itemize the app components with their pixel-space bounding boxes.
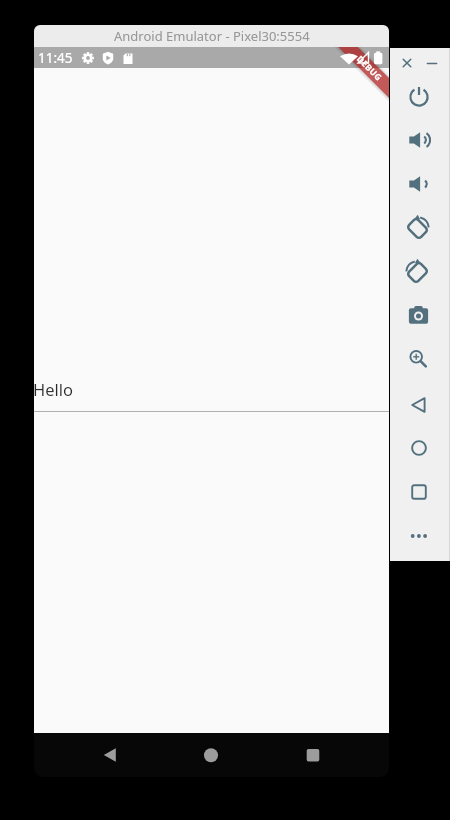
button[interactable]	[293, 735, 333, 775]
button[interactable]	[400, 473, 438, 511]
button[interactable]	[400, 517, 438, 555]
button[interactable]	[424, 55, 440, 71]
button[interactable]	[90, 735, 130, 775]
staticText: Android Emulator - Pixel30:5554	[114, 27, 310, 45]
staticText: DEBUG	[354, 53, 385, 84]
button[interactable]	[400, 429, 438, 467]
button[interactable]	[400, 77, 438, 115]
button[interactable]: Hello	[34, 376, 389, 409]
button[interactable]	[400, 165, 438, 203]
button[interactable]	[400, 297, 438, 335]
button[interactable]	[400, 209, 438, 247]
staticText: Hello	[34, 378, 74, 400]
button[interactable]	[400, 341, 438, 379]
button[interactable]	[400, 386, 438, 424]
staticText: 11:45	[38, 49, 73, 67]
button[interactable]	[191, 735, 231, 775]
button[interactable]	[400, 253, 438, 291]
button[interactable]	[399, 55, 415, 71]
button[interactable]	[400, 121, 438, 159]
